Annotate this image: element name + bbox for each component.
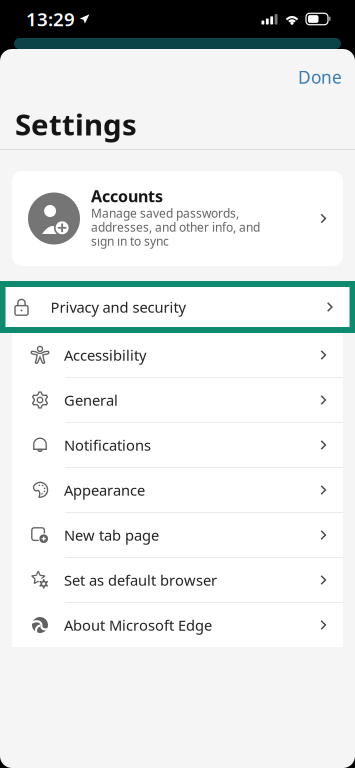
- staticText: Appearance: [64, 480, 145, 500]
- staticText: Settings: [15, 104, 137, 143]
- button[interactable]: Appearance: [12, 468, 343, 513]
- button[interactable]: Accessibility: [12, 333, 343, 378]
- staticText: Accounts: [91, 185, 163, 207]
- button[interactable]: New tab page: [12, 513, 343, 558]
- staticText: addresses, and other info, and: [91, 219, 260, 235]
- staticText: New tab page: [64, 525, 159, 545]
- button[interactable]: Set as default browser: [12, 558, 343, 603]
- staticText: Set as default browser: [64, 570, 217, 590]
- staticText: Manage saved passwords,: [91, 205, 239, 221]
- staticText: sign in to sync: [91, 233, 169, 249]
- staticText: Accessibility: [64, 345, 146, 365]
- button[interactable]: Done: [284, 50, 355, 97]
- button[interactable]: About Microsoft Edge: [12, 603, 343, 647]
- staticText: General: [64, 390, 118, 410]
- button[interactable]: Notifications: [12, 423, 343, 468]
- button[interactable]: General: [12, 378, 343, 423]
- staticText: Notifications: [64, 435, 151, 455]
- staticText: Privacy and security: [50, 297, 185, 317]
- staticText: 13:29: [26, 7, 75, 31]
- button[interactable]: Accounts: [0, 171, 355, 266]
- staticText: About Microsoft Edge: [64, 615, 212, 635]
- button[interactable]: Privacy and security: [0, 281, 355, 333]
- staticText: Done: [298, 65, 342, 88]
